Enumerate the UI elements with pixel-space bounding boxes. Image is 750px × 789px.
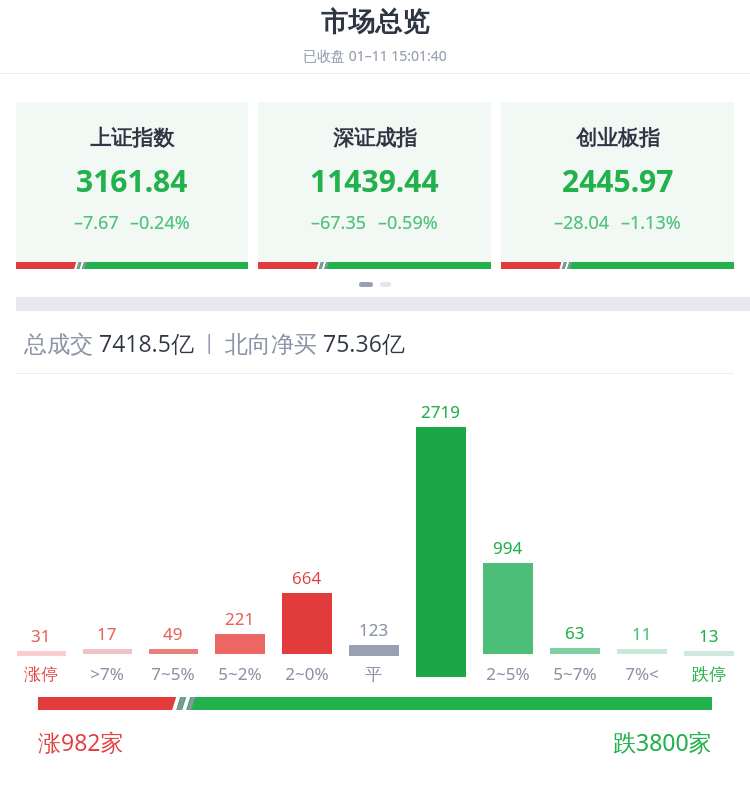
staticText: >7% xyxy=(90,662,124,685)
staticText: 11 xyxy=(632,622,652,645)
staticText: 平 xyxy=(365,664,382,685)
staticText: 7%< xyxy=(625,662,659,685)
button[interactable]: 2719 xyxy=(407,400,474,685)
button[interactable]: 13 xyxy=(675,400,742,685)
staticText: 创业板指 xyxy=(576,125,660,151)
staticText: –7.67 xyxy=(74,210,119,235)
staticText: –0.24% xyxy=(130,210,190,235)
button[interactable]: 17 xyxy=(74,400,140,685)
button[interactable]: 664 xyxy=(273,400,340,685)
staticText: 5~2% xyxy=(218,662,262,685)
button[interactable]: 49 xyxy=(140,400,206,685)
staticText: 涨停 xyxy=(24,664,58,685)
staticText: 2719 xyxy=(421,400,460,423)
staticText: 11439.44 xyxy=(310,160,439,201)
staticText: 63 xyxy=(565,621,585,644)
staticText: –0.59% xyxy=(378,210,438,235)
staticText: 221 xyxy=(225,607,255,630)
staticText: 49 xyxy=(163,622,183,645)
button[interactable]: Page 2 xyxy=(380,282,391,287)
staticText: 17 xyxy=(97,622,117,645)
staticText: 上证指数 xyxy=(90,125,174,151)
staticText: 已收盘 01–11 15:01:40 xyxy=(303,46,447,65)
button[interactable]: 深证成指 xyxy=(258,102,491,269)
staticText: 总成交 xyxy=(24,327,99,358)
staticText: 2~5% xyxy=(486,662,530,685)
staticText: 跌停 xyxy=(692,664,726,685)
staticText: 2445.97 xyxy=(562,160,674,201)
staticText: 深证成指 xyxy=(333,125,417,151)
staticText: 涨982家 xyxy=(38,726,124,757)
button[interactable]: 11 xyxy=(608,400,675,685)
staticText: –28.04 xyxy=(554,210,610,235)
staticText: 北向净买 xyxy=(225,327,323,358)
button[interactable]: 创业板指 xyxy=(501,102,734,269)
staticText: 3161.84 xyxy=(76,160,188,201)
button[interactable]: 31 xyxy=(8,400,74,685)
button[interactable]: 221 xyxy=(206,400,273,685)
staticText: 5~7% xyxy=(553,662,597,685)
staticText: 2~0% xyxy=(285,662,329,685)
button[interactable]: 994 xyxy=(474,400,541,685)
button[interactable]: Page 1 xyxy=(359,282,373,287)
staticText: 市场总览 xyxy=(321,5,429,39)
staticText: 994 xyxy=(493,536,523,559)
staticText: 跌3800家 xyxy=(613,726,712,757)
button[interactable]: 总成交 xyxy=(24,311,750,373)
staticText: 7418.5亿 xyxy=(99,327,194,358)
staticText: | xyxy=(194,329,225,355)
staticText: 123 xyxy=(359,618,389,641)
staticText: 13 xyxy=(699,624,719,647)
staticText: –1.13% xyxy=(621,210,681,235)
button[interactable]: 63 xyxy=(541,400,608,685)
button[interactable]: 123 xyxy=(340,400,407,685)
staticText: 75.36亿 xyxy=(323,327,405,358)
staticText: 31 xyxy=(31,624,51,647)
staticText: –67.35 xyxy=(311,210,367,235)
staticText: 7~5% xyxy=(151,662,195,685)
staticText: 664 xyxy=(292,566,322,589)
button[interactable]: 上证指数 xyxy=(16,102,248,269)
